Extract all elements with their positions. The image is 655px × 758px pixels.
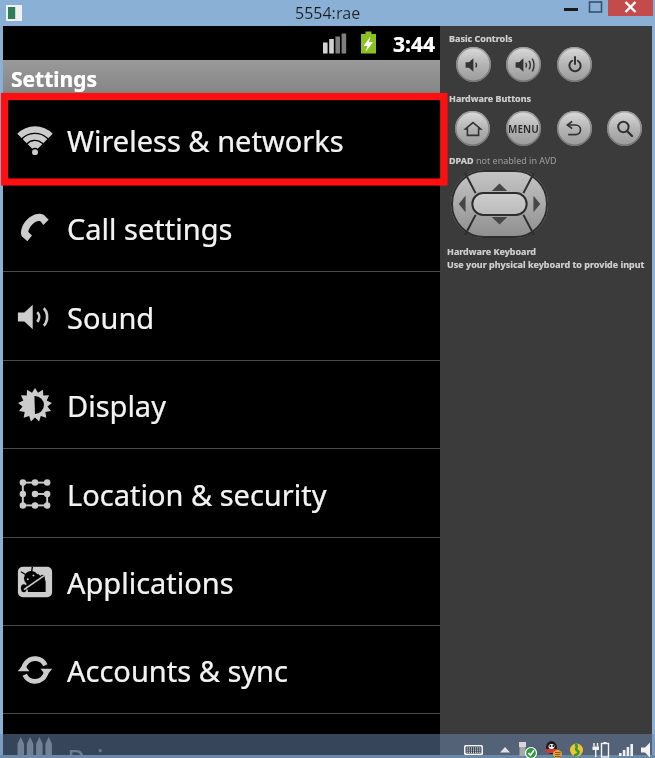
button[interactable]: Call settings	[3, 184, 440, 272]
staticText: Basic Controls	[449, 32, 513, 44]
button[interactable]: search	[607, 111, 642, 146]
staticText: Hardware Buttons	[449, 92, 532, 104]
staticText: Settings	[11, 65, 98, 94]
button[interactable]: Sound	[3, 273, 440, 361]
staticText: Sound	[67, 298, 155, 337]
button[interactable]: menu	[506, 111, 541, 146]
staticText: Accounts & sync	[67, 651, 288, 690]
button[interactable]: Accounts & sync	[3, 626, 440, 714]
button[interactable]: back	[557, 111, 592, 146]
staticText: Location & security	[67, 475, 327, 514]
staticText: MENU	[508, 122, 539, 136]
button[interactable]: Privacy	[3, 715, 440, 758]
staticText: Hardware Keyboard	[447, 245, 537, 257]
button[interactable]: volUp	[506, 47, 541, 82]
staticText: Wireless & networks	[67, 121, 344, 160]
staticText: Call settings	[67, 209, 233, 248]
staticText: Display	[67, 386, 166, 425]
button[interactable]: Location & security	[3, 450, 440, 538]
button[interactable]: volDown	[456, 47, 491, 82]
button[interactable]: Display	[3, 361, 440, 449]
staticText: 3:44	[393, 30, 435, 59]
staticText: Applications	[67, 563, 234, 602]
button[interactable]: Close	[608, 0, 653, 16]
button[interactable]: home	[455, 111, 490, 146]
button[interactable]: Minimize	[540, 0, 590, 16]
button[interactable]: DPAD	[451, 170, 548, 238]
staticText: Use your physical keyboard to provide in…	[447, 258, 647, 270]
button[interactable]: Wireless & networks	[3, 96, 440, 184]
staticText: not enabled in AVD	[476, 154, 557, 166]
staticText: 5554:rae	[295, 2, 361, 24]
staticText: Privacy	[67, 740, 164, 758]
button[interactable]: power	[557, 47, 592, 82]
button[interactable]: Maximize	[583, 0, 609, 16]
staticText: DPAD	[449, 154, 476, 166]
button[interactable]: Applications	[3, 538, 440, 626]
